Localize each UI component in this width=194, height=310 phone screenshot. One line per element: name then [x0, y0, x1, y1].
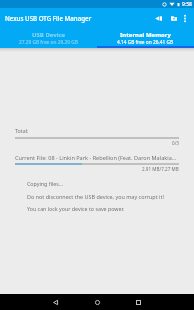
staticText: You can lock your device to save power. — [27, 205, 125, 212]
staticText: Current File: 08 - Linkin Park - Rebelli… — [15, 154, 180, 162]
staticText: 0/3 — [172, 140, 179, 146]
staticText: Nexus USB OTG File Manager — [5, 14, 92, 22]
staticText: 2.91 MB/7.27 MB — [142, 166, 179, 172]
button[interactable]: USB Device — [0, 27, 97, 48]
staticText: 4.14 GB free on 26.41 GB — [117, 39, 174, 46]
button[interactable]: Eject USB device — [151, 11, 165, 25]
staticText: 9:58 — [182, 1, 192, 8]
staticText: Internal Memory — [120, 31, 171, 39]
staticText: USB Device — [32, 31, 66, 39]
staticText: Copying files... — [27, 180, 64, 187]
staticText: Do not disconnect the USB device, you ma… — [27, 193, 164, 200]
button[interactable]: Create folder — [167, 11, 181, 25]
button[interactable]: Back — [47, 298, 63, 306]
button[interactable]: Home — [89, 298, 105, 306]
button[interactable]: More options — [178, 11, 192, 25]
button[interactable]: Internal Memory — [97, 27, 194, 48]
button[interactable]: Recents — [130, 298, 146, 306]
staticText: 27.29 GB free on 29.29 GB — [19, 39, 78, 46]
staticText: Total: — [15, 127, 29, 134]
